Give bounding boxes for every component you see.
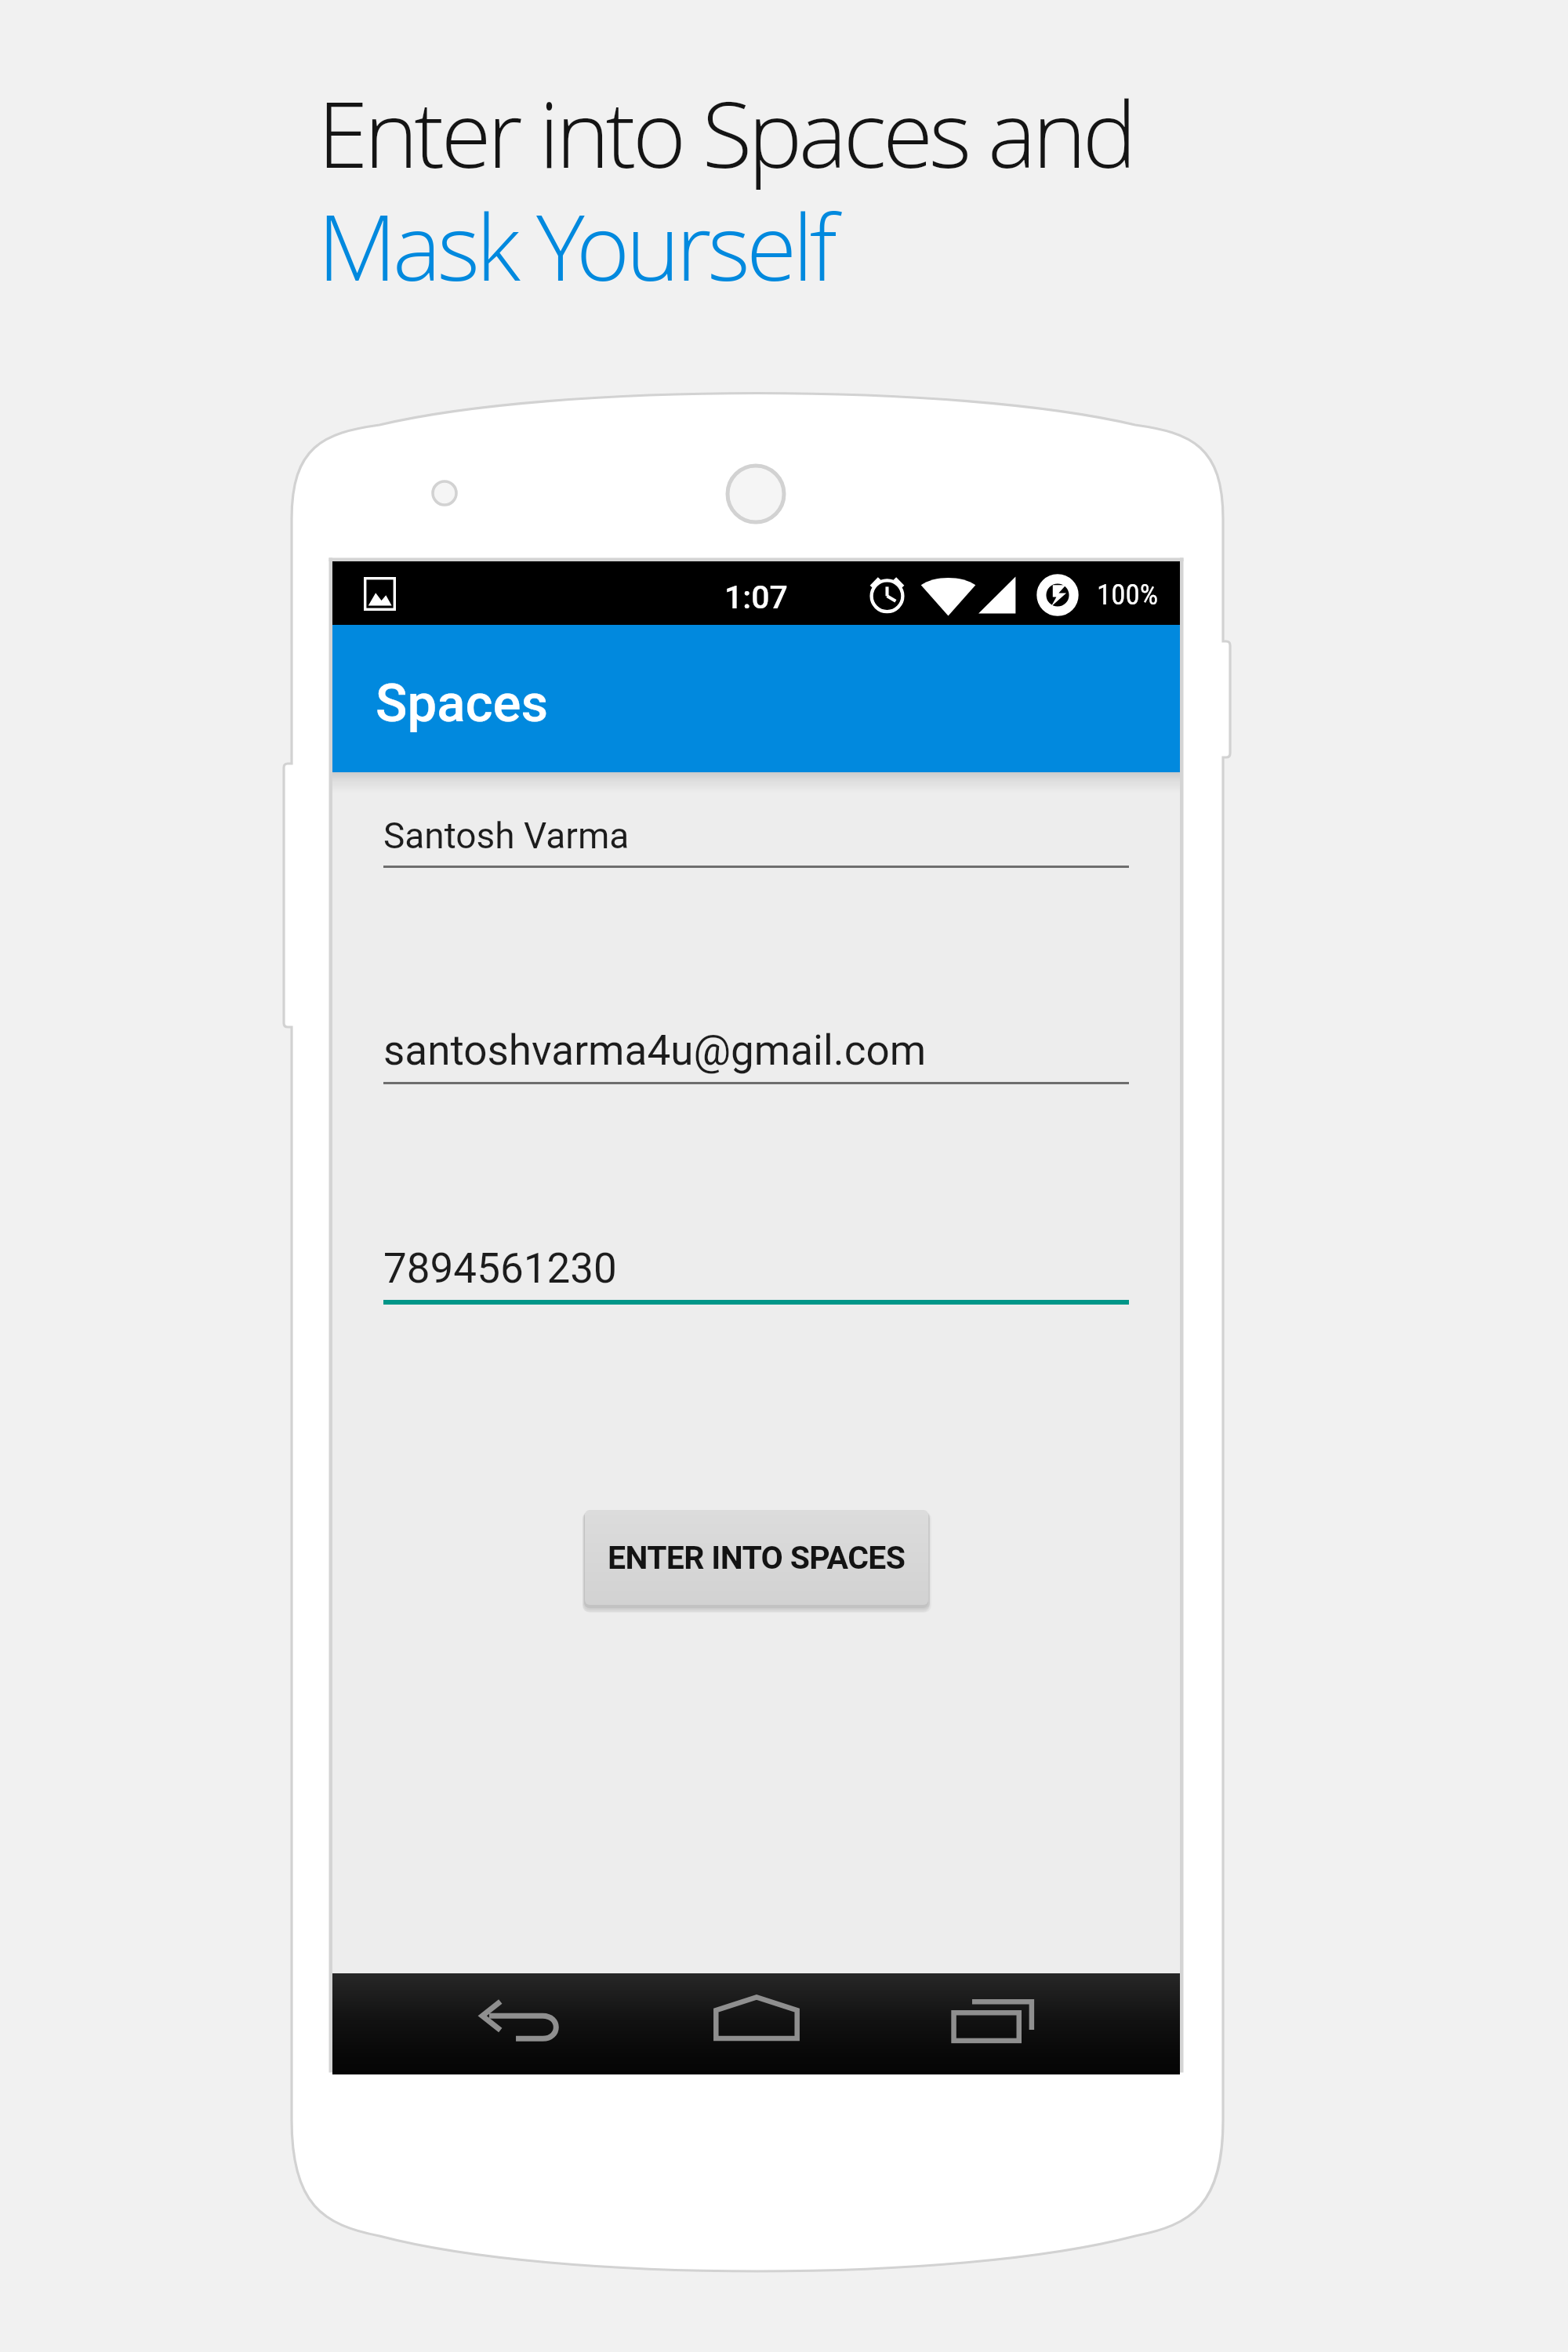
staticText: ENTER INTO SPACES: [608, 1539, 906, 1577]
staticText: Santosh Varma: [383, 815, 630, 857]
button[interactable]: Santosh Varma: [383, 801, 1129, 868]
staticText: 1:07: [724, 579, 788, 616]
staticText: 100%: [1097, 578, 1159, 612]
staticText: Enter into Spaces and: [318, 70, 1134, 194]
staticText: 7894561230: [383, 1244, 617, 1293]
button[interactable]: Recent apps: [898, 1973, 1180, 2074]
button[interactable]: santoshvarma4u@gmail.com: [383, 1011, 1129, 1084]
button[interactable]: Back: [332, 1973, 615, 2074]
staticText: Spaces: [376, 673, 549, 735]
button[interactable]: ENTER INTO SPACES: [585, 1510, 928, 1605]
staticText: Mask Yourself: [318, 183, 833, 307]
button[interactable]: 7894561230: [383, 1229, 1129, 1305]
button[interactable]: Home: [615, 1973, 898, 2074]
button[interactable]: Spaces: [332, 625, 1180, 772]
staticText: santoshvarma4u@gmail.com: [383, 1026, 927, 1075]
